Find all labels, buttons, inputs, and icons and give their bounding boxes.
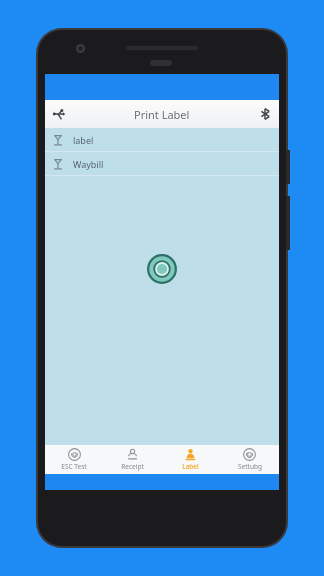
- staticText: Settubg: [238, 462, 262, 471]
- staticText: Waybill: [73, 158, 104, 170]
- staticText: label: [73, 134, 94, 146]
- button[interactable]: USB connection: [45, 100, 73, 128]
- staticText: ESC Test: [61, 462, 87, 471]
- staticText: Print Label: [134, 107, 190, 122]
- button[interactable]: label: [45, 128, 279, 151]
- button[interactable]: Settubg: [220, 445, 279, 474]
- button[interactable]: Receipt: [103, 445, 161, 474]
- button[interactable]: Label: [161, 445, 220, 474]
- button[interactable]: ESC Test: [45, 445, 103, 474]
- staticText: Receipt: [121, 462, 144, 471]
- button[interactable]: Waybill: [45, 152, 279, 175]
- staticText: Label: [182, 462, 199, 471]
- button[interactable]: Bluetooth: [251, 100, 279, 128]
